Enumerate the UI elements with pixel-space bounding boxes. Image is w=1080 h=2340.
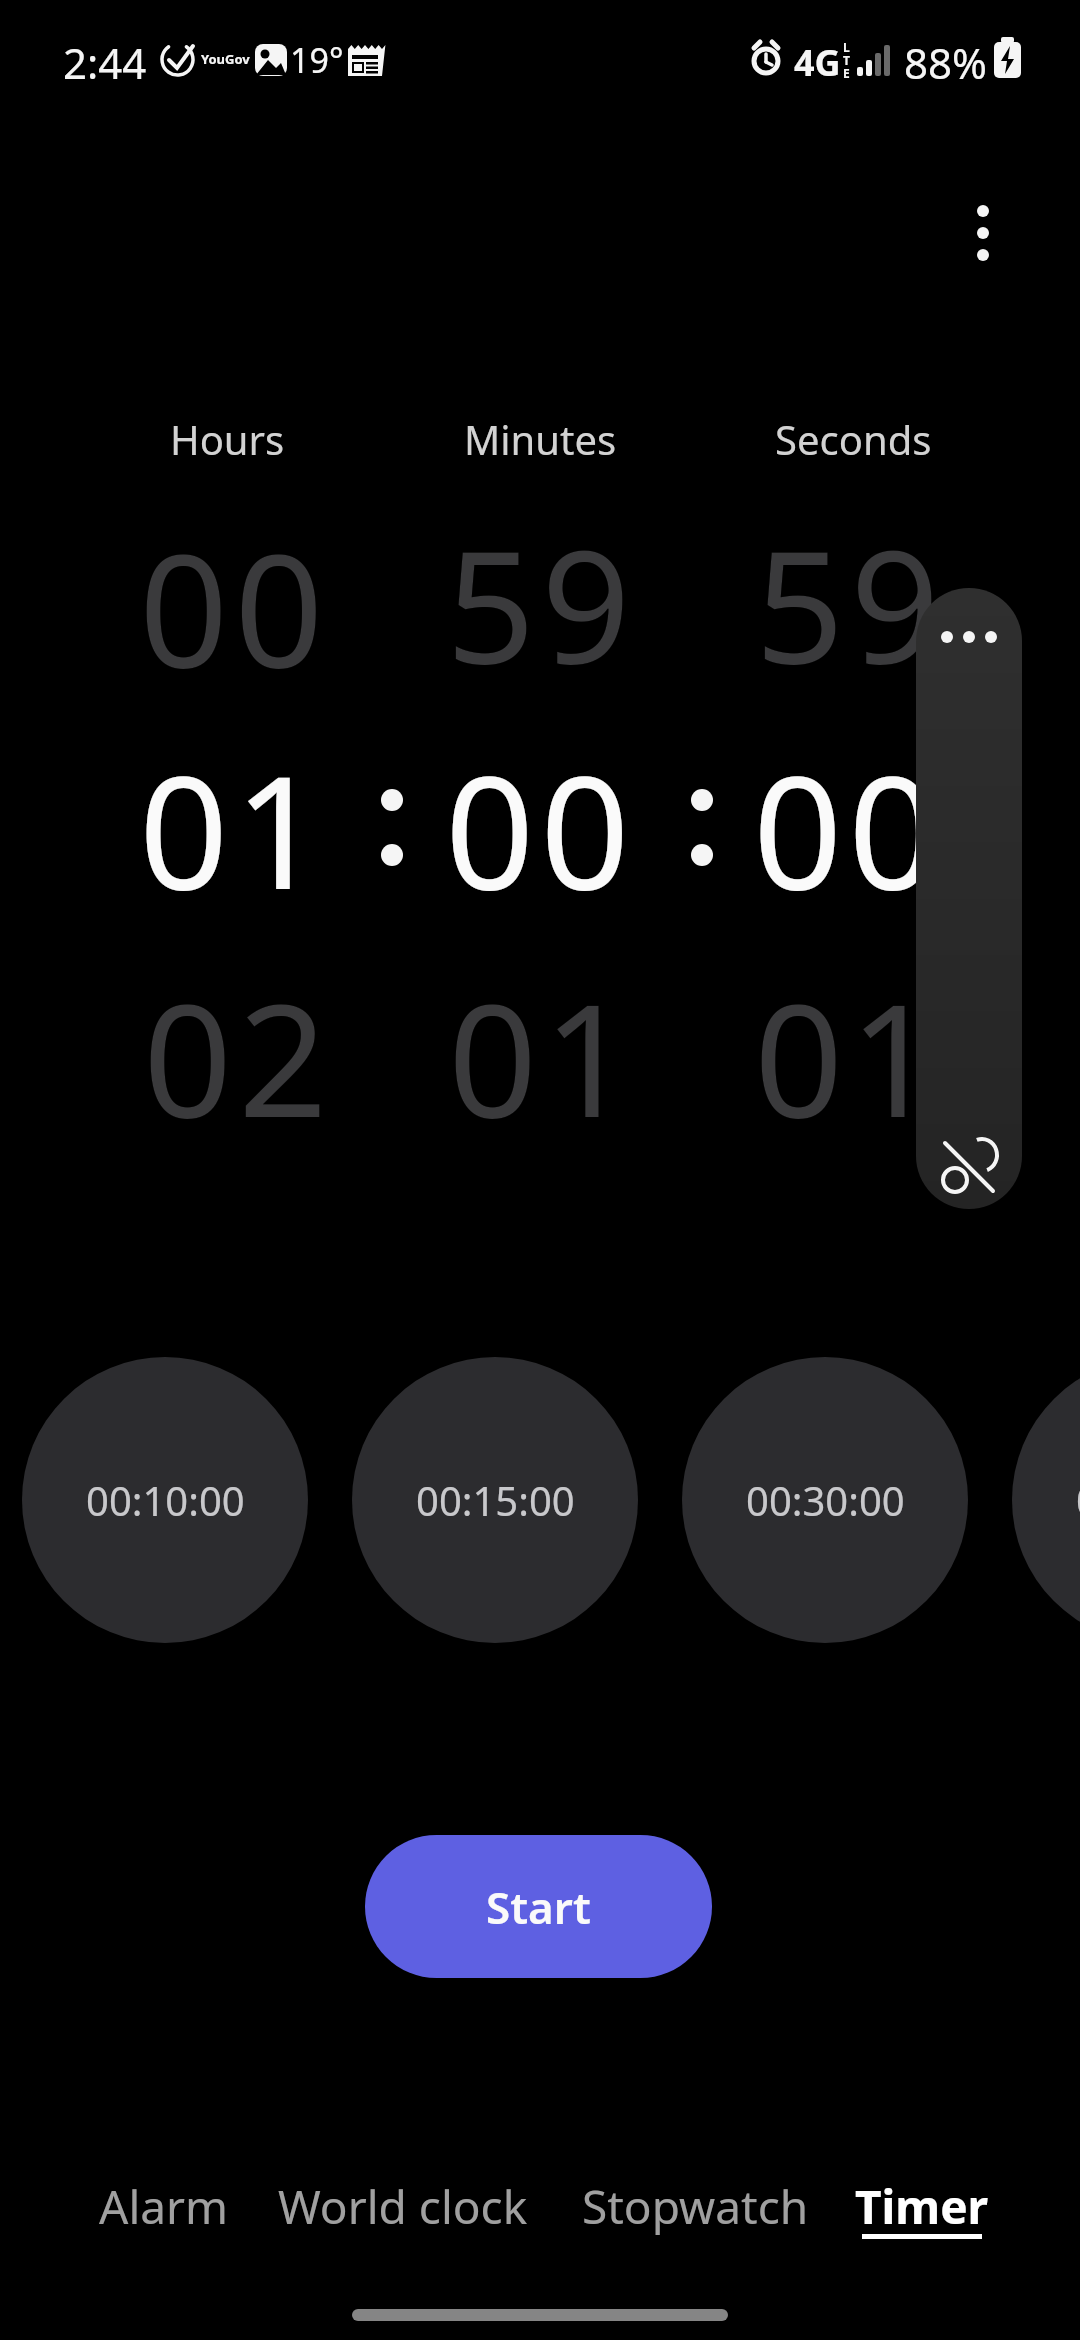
staticText: 00 [139,500,330,680]
staticText: 19° [290,37,344,81]
staticText: 00:15:00 [416,1473,575,1527]
button[interactable]: World clock [273,2171,533,2241]
button[interactable] [956,186,1010,280]
staticText: Seconds [775,412,932,462]
staticText: 01 [139,722,330,902]
staticText: L [843,39,850,53]
staticText: World clock [278,2175,528,2238]
staticText: 02 [143,950,334,1130]
staticText: Timer [855,2175,989,2238]
button[interactable]: 01:00:00 [1012,1357,1080,1643]
button[interactable]: Start [365,1835,712,1978]
staticText: E [843,65,850,79]
button[interactable]: 00:30:00 [682,1357,968,1643]
staticText: 01:00:00 [1076,1473,1080,1527]
staticText: 01 [448,950,639,1130]
staticText: 00 [445,722,636,902]
staticText: YouGov [201,50,250,68]
staticText: 88% [904,34,987,84]
staticText: 00:10:00 [86,1473,245,1527]
staticText: Stopwatch [582,2175,809,2238]
staticText: Alarm [99,2175,229,2238]
button[interactable] [916,588,1022,1209]
staticText: Hours [170,412,285,462]
button[interactable]: Stopwatch [575,2171,815,2241]
staticText: 01 [754,950,945,1130]
staticText: Start [486,1877,591,1937]
button[interactable]: 00:15:00 [352,1357,638,1643]
button[interactable]: Timer [847,2171,997,2241]
staticText: 59 [446,496,637,676]
staticText: 4G [794,38,841,80]
staticText: 00 [753,722,944,902]
staticText: 00:30:00 [746,1473,905,1527]
button[interactable]: Alarm [79,2171,249,2241]
staticText: 2:44 [63,34,147,84]
staticText: 59 [755,496,946,676]
staticText: T [843,52,850,66]
staticText: Minutes [464,412,617,462]
button[interactable]: 00:10:00 [22,1357,308,1643]
